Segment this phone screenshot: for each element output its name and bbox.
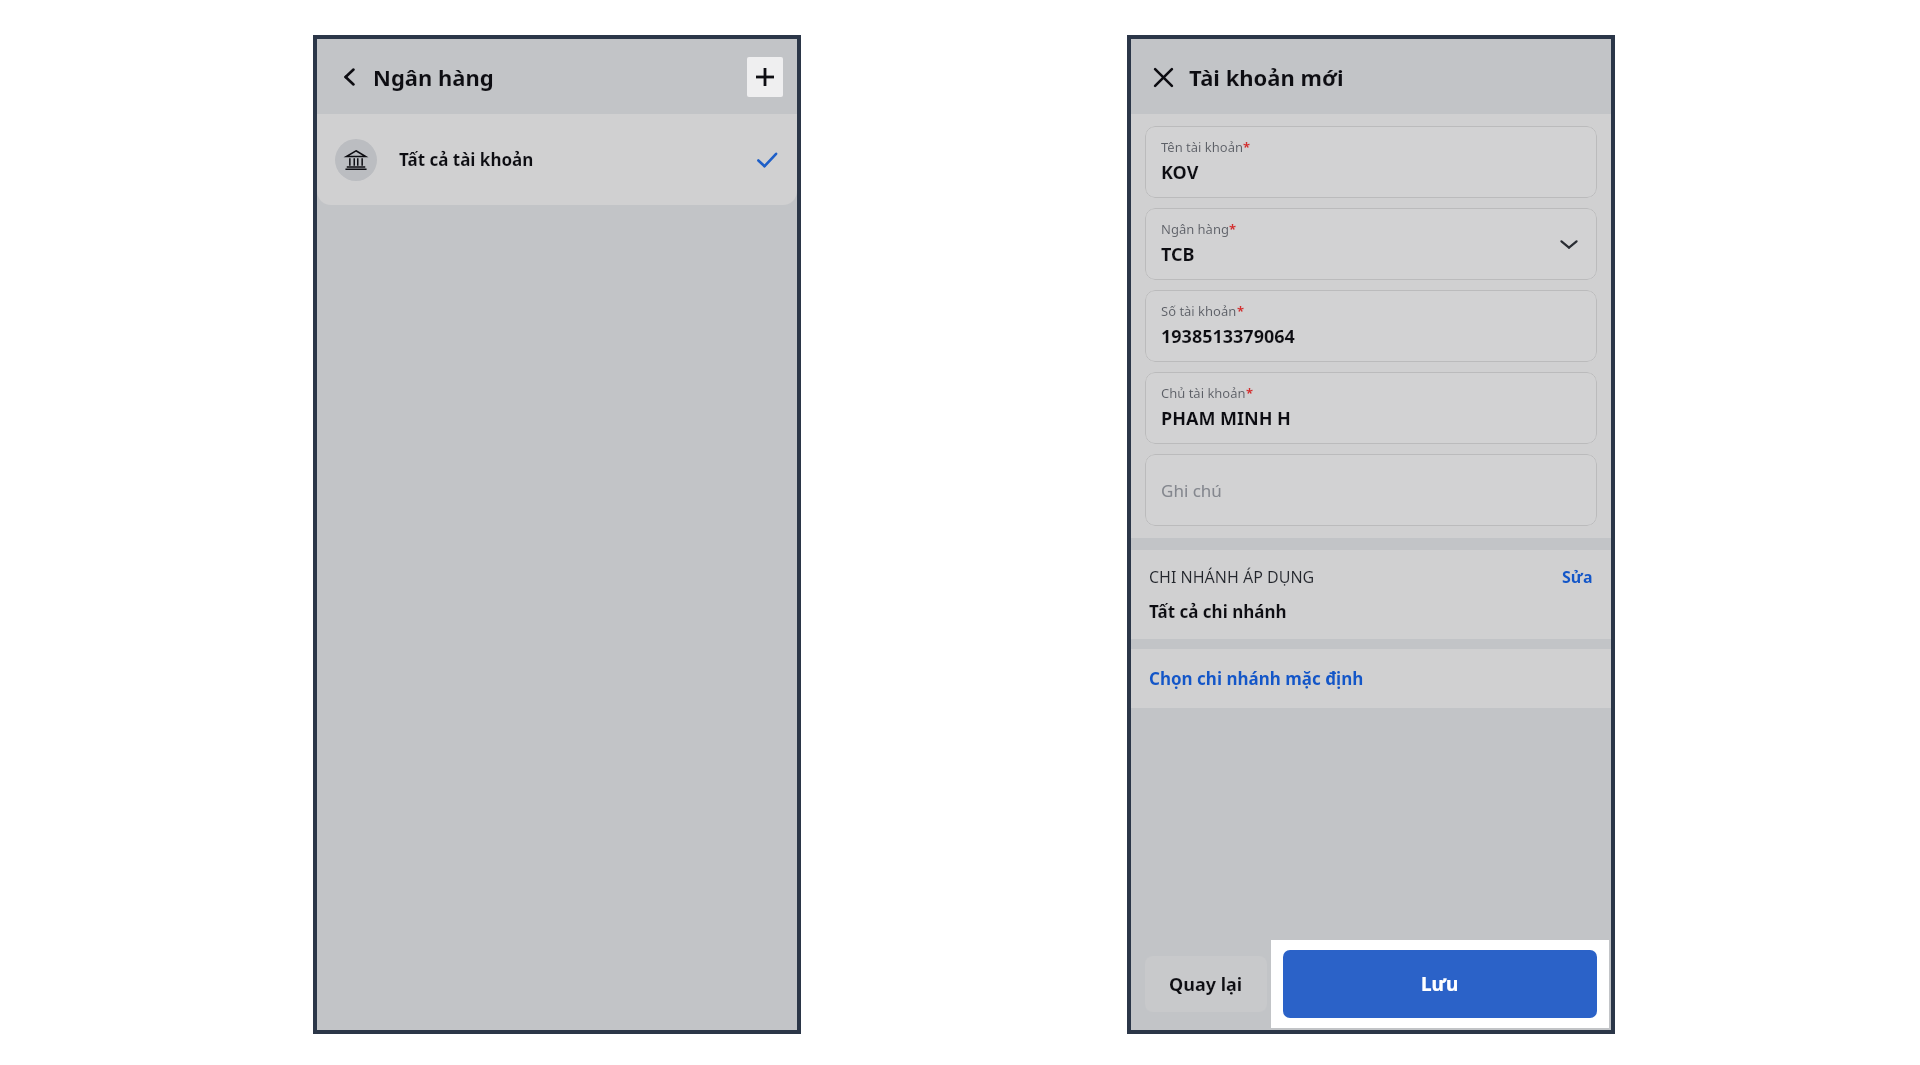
staticText: Lưu	[1421, 971, 1459, 997]
staticText: *	[1237, 302, 1245, 320]
button[interactable]: Quay lại	[1145, 956, 1267, 1012]
staticText: CHI NHÁNH ÁP DỤNG	[1149, 566, 1315, 588]
staticText: Ngân hàng	[1161, 220, 1229, 238]
button[interactable]: Lưu	[1283, 950, 1597, 1018]
staticText: Chủ tài khoản	[1161, 384, 1246, 402]
button[interactable]: CHI NHÁNH ÁP DỤNG	[1131, 550, 1611, 639]
staticText: Chọn chi nhánh mặc định	[1149, 667, 1364, 690]
staticText: Quay lại	[1169, 972, 1243, 997]
button[interactable]: Back	[333, 60, 367, 94]
staticText: Sửa	[1562, 566, 1593, 588]
staticText: *	[1229, 220, 1237, 238]
button[interactable]: Tên tài khoản	[1145, 126, 1597, 198]
staticText: Tài khoản mới	[1189, 62, 1344, 92]
staticText: Ghi chú	[1161, 479, 1222, 502]
button[interactable]: Sửa	[1562, 566, 1593, 588]
staticText: 1938513379064	[1161, 324, 1295, 349]
staticText: PHAM MINH H	[1161, 406, 1291, 431]
staticText: TCB	[1161, 242, 1195, 267]
staticText: Tất cả tài khoản	[399, 148, 534, 171]
staticText: Ngân hàng	[373, 62, 494, 92]
staticText: *	[1243, 138, 1251, 156]
staticText: *	[1246, 384, 1254, 402]
button[interactable]: Close	[1147, 61, 1179, 93]
button[interactable]: Ghi chú	[1145, 454, 1597, 526]
staticText: KOV	[1161, 160, 1199, 185]
button[interactable]: Chọn chi nhánh mặc định	[1131, 649, 1611, 708]
button[interactable]: Tất cả tài khoản	[317, 114, 797, 205]
button[interactable]: Số tài khoản	[1145, 290, 1597, 362]
staticText: Tất cả chi nhánh	[1149, 600, 1287, 623]
button[interactable]: Add bank account	[747, 57, 783, 97]
staticText: Tên tài khoản	[1161, 138, 1243, 156]
button[interactable]: Ngân hàng	[1145, 208, 1597, 280]
staticText: Số tài khoản	[1161, 302, 1237, 320]
other: Expand bank list	[1557, 232, 1581, 256]
button[interactable]: Chủ tài khoản	[1145, 372, 1597, 444]
